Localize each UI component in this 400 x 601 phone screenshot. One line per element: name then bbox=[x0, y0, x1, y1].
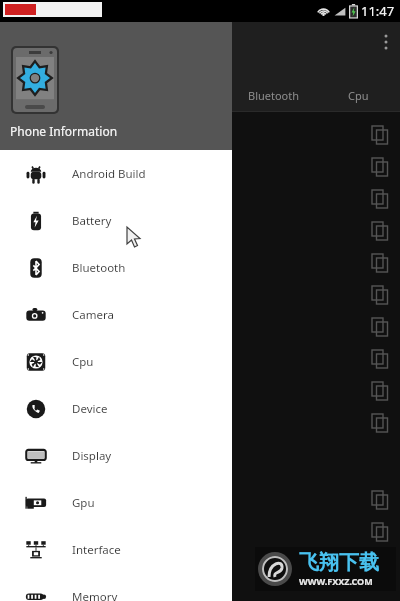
staticText: Camera bbox=[72, 307, 114, 323]
button[interactable]: Copy bbox=[371, 125, 391, 145]
staticText: 11:47 bbox=[361, 2, 395, 20]
staticText: Bluetooth bbox=[72, 260, 126, 276]
button[interactable]: Copy bbox=[371, 317, 391, 337]
button[interactable]: Device bbox=[0, 385, 232, 432]
button[interactable]: Copy bbox=[371, 157, 391, 177]
staticText: Cpu bbox=[348, 88, 369, 103]
button[interactable]: Copy bbox=[371, 285, 391, 305]
button[interactable]: Copy bbox=[371, 349, 391, 369]
button[interactable]: Bluetooth bbox=[0, 244, 232, 291]
staticText: Gpu bbox=[72, 495, 95, 511]
staticText: Bluetooth bbox=[248, 88, 300, 103]
button[interactable]: Copy bbox=[371, 381, 391, 401]
staticText: Battery bbox=[72, 213, 112, 229]
button[interactable]: Gpu bbox=[0, 479, 232, 526]
button[interactable]: Copy bbox=[371, 522, 391, 542]
button[interactable]: Android Build bbox=[0, 150, 232, 197]
staticText: Memory bbox=[72, 589, 118, 601]
button[interactable]: Copy bbox=[371, 554, 391, 574]
button[interactable]: Battery bbox=[0, 197, 232, 244]
button[interactable]: Copy bbox=[371, 490, 391, 510]
staticText: Cpu bbox=[72, 354, 94, 370]
button[interactable]: Cpu bbox=[316, 80, 400, 110]
staticText: WWW.FXXZ.COM bbox=[299, 575, 373, 587]
button[interactable]: Copy bbox=[371, 189, 391, 209]
staticText: Device bbox=[72, 401, 108, 417]
staticText: Interface bbox=[72, 542, 121, 558]
button[interactable]: Bluetooth bbox=[232, 80, 316, 110]
button[interactable]: Copy bbox=[371, 221, 391, 241]
button[interactable]: Memory bbox=[0, 573, 232, 601]
button[interactable]: More options bbox=[374, 30, 398, 54]
staticText: Phone Information bbox=[10, 123, 118, 139]
button[interactable]: Camera bbox=[0, 291, 232, 338]
button[interactable]: Display bbox=[0, 432, 232, 479]
button[interactable]: Interface bbox=[0, 526, 232, 573]
staticText: Android Build bbox=[72, 166, 146, 182]
staticText: Display bbox=[72, 448, 112, 464]
button[interactable]: Cpu bbox=[0, 338, 232, 385]
button[interactable]: Phone Information bbox=[0, 22, 232, 150]
button[interactable]: Copy bbox=[371, 413, 391, 433]
button[interactable]: Copy bbox=[371, 253, 391, 273]
staticText: www.FXXZ.com bbox=[34, 2, 102, 17]
staticText: 飞翔下载 bbox=[299, 550, 379, 575]
